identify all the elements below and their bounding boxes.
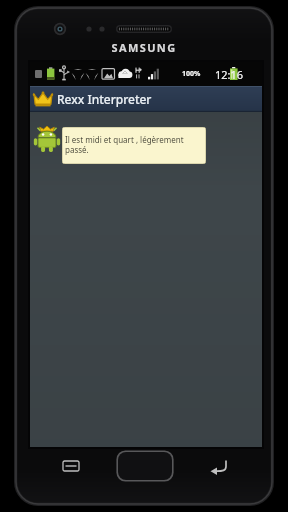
- staticText: 12:16: [215, 67, 244, 82]
- other: App icon: [33, 89, 53, 109]
- other: Rexx avatar: [32, 124, 62, 154]
- staticText: 100%: [182, 69, 201, 79]
- button[interactable]: Il est midi et quart , légèrement passé.: [62, 127, 206, 164]
- staticText: Rexx Interpreter: [57, 91, 152, 107]
- staticText: Il est midi et quart , légèrement passé.: [65, 134, 203, 155]
- staticText: SAMSUNG: [0, 40, 288, 55]
- button[interactable]: Rexx avatar: [32, 124, 208, 161]
- button[interactable]: App icon: [30, 86, 262, 112]
